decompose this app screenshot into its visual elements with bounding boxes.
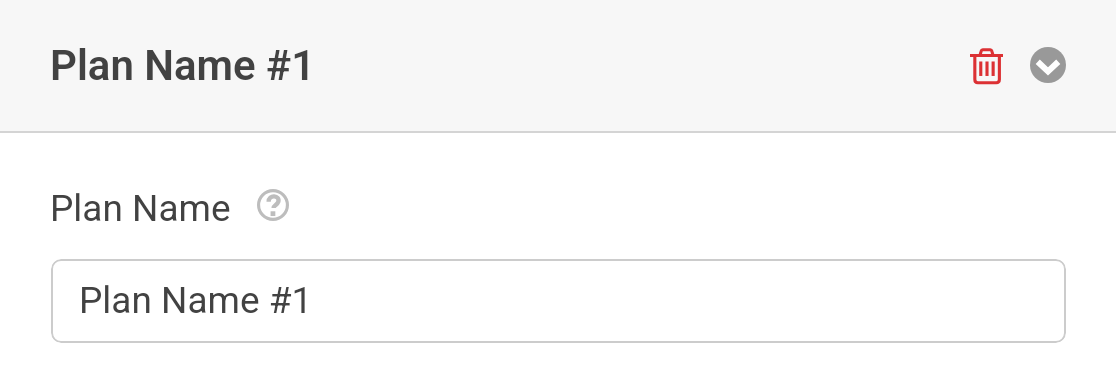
button[interactable]: Help bbox=[253, 185, 293, 225]
button[interactable]: Plan Name #1 bbox=[40, 31, 330, 91]
staticText: Plan Name bbox=[50, 187, 231, 230]
staticText: Plan Name #1 bbox=[50, 41, 316, 90]
button[interactable]: Plan Name #1 bbox=[51, 259, 1066, 343]
button[interactable]: Delete plan bbox=[956, 36, 1016, 96]
staticText: Plan Name #1 bbox=[79, 279, 313, 322]
button[interactable]: Collapse section bbox=[1018, 35, 1078, 95]
